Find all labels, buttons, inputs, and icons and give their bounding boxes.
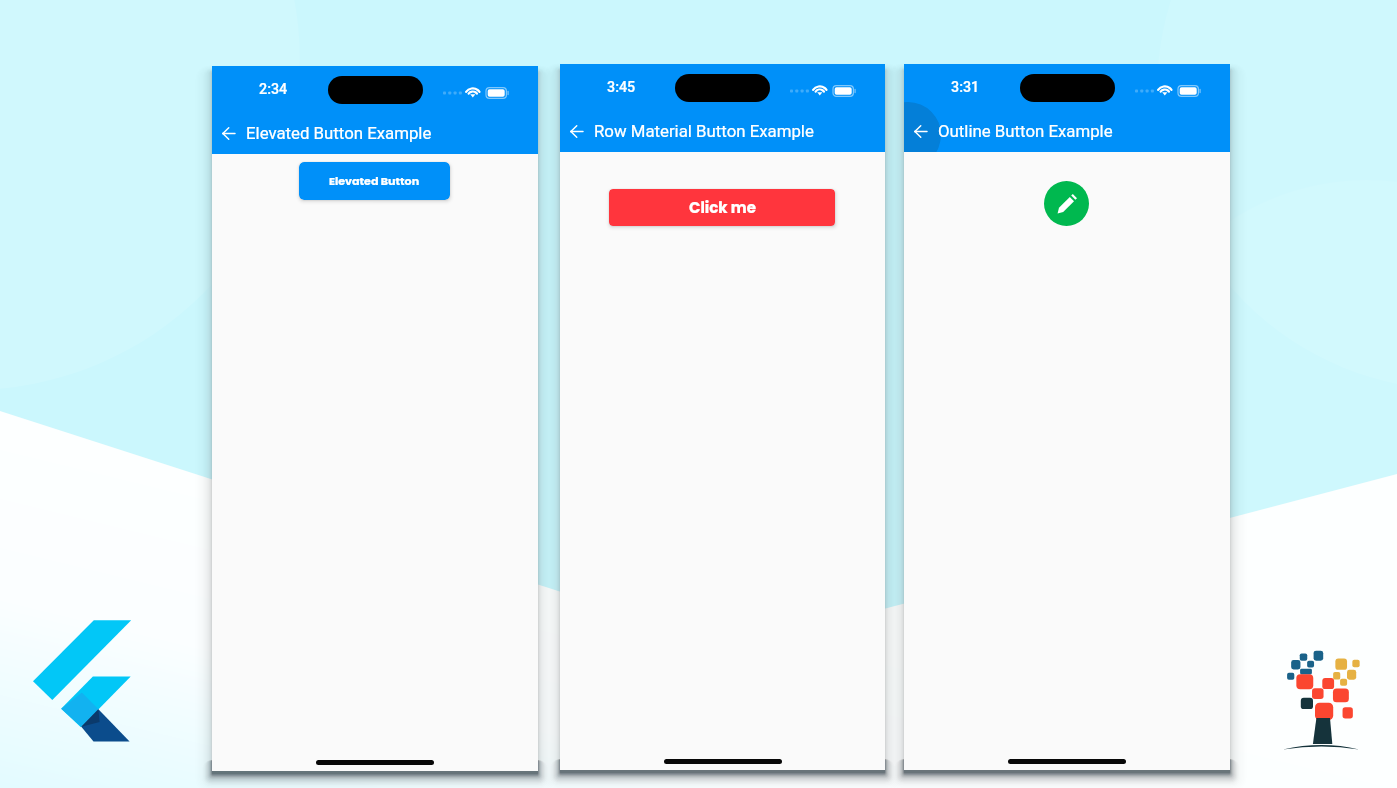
staticText: Elevated Button bbox=[329, 173, 420, 189]
staticText: Click me bbox=[689, 197, 756, 218]
staticText: Row Material Button Example bbox=[594, 121, 814, 141]
staticText: 2:34 bbox=[259, 81, 288, 98]
staticText: 3:31 bbox=[951, 79, 980, 96]
button[interactable]: Back bbox=[560, 112, 596, 151]
button[interactable]: Back bbox=[212, 114, 248, 153]
button[interactable]: Edit bbox=[1044, 181, 1089, 226]
staticText: 3:45 bbox=[607, 79, 636, 96]
button[interactable]: Elevated Button bbox=[299, 162, 450, 200]
button[interactable]: Back bbox=[904, 112, 940, 151]
staticText: Outline Button Example bbox=[938, 121, 1113, 141]
staticText: Elevated Button Example bbox=[246, 123, 432, 143]
button[interactable]: Click me bbox=[609, 189, 835, 226]
